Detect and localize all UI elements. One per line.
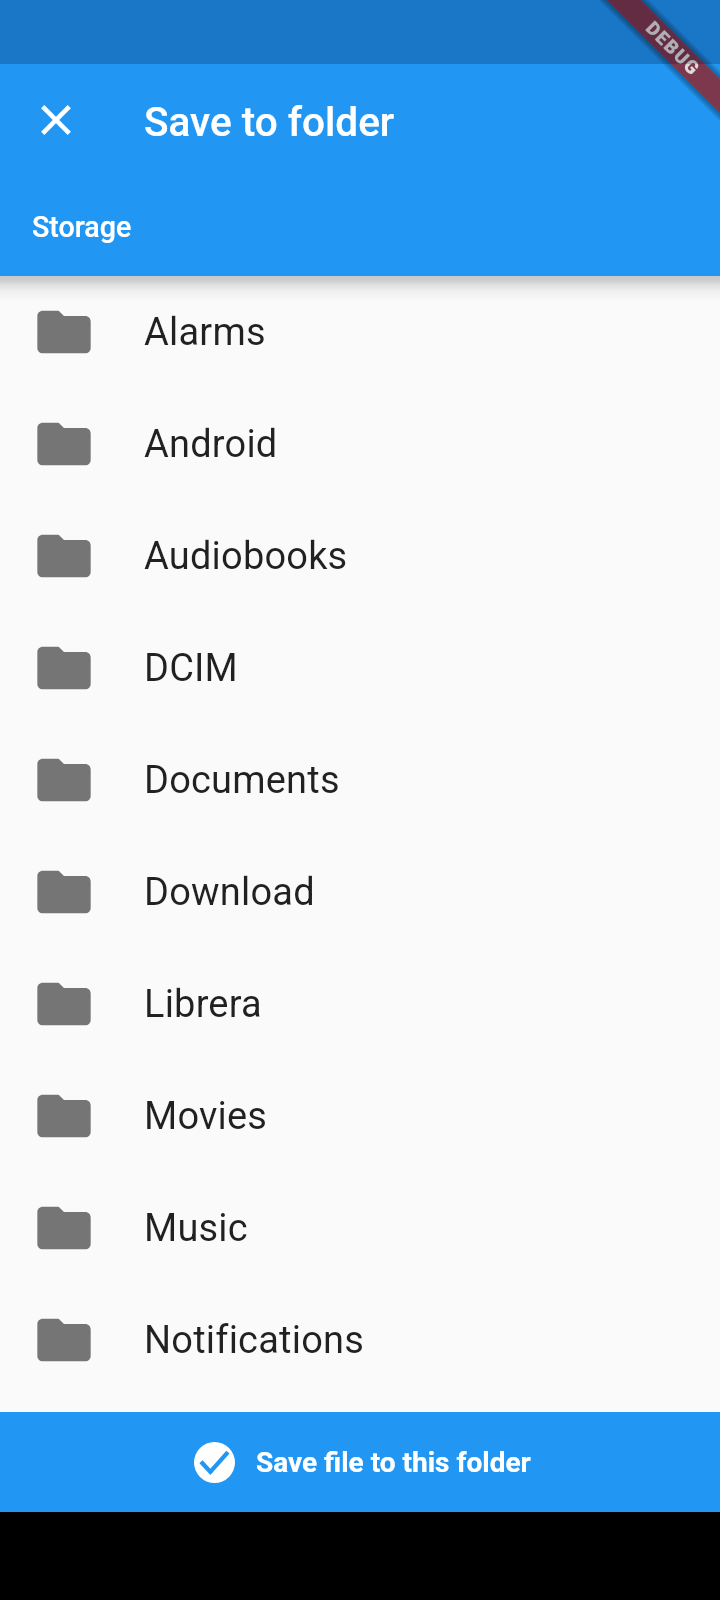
- staticText: DEBUG: [641, 17, 705, 81]
- staticText: Alarms: [144, 310, 266, 355]
- staticText: Notifications: [144, 1318, 365, 1363]
- button[interactable]: Android: [0, 388, 720, 500]
- staticText: Documents: [144, 758, 340, 803]
- button[interactable]: Storage: [32, 196, 144, 252]
- staticText: Download: [144, 870, 315, 915]
- staticText: Music: [144, 1206, 248, 1251]
- staticText: DCIM: [144, 646, 238, 691]
- staticText: Storage: [32, 210, 132, 244]
- staticText: Save to folder: [144, 98, 395, 145]
- staticText: Save file to this folder: [256, 1446, 531, 1479]
- button[interactable]: Download: [0, 836, 720, 948]
- button[interactable]: Save file to this folder: [0, 1412, 720, 1512]
- button[interactable]: Close: [8, 72, 104, 168]
- button[interactable]: Music: [0, 1172, 720, 1284]
- button[interactable]: Documents: [0, 724, 720, 836]
- button[interactable]: DCIM: [0, 612, 720, 724]
- button[interactable]: Alarms: [0, 276, 720, 388]
- button[interactable]: Notifications: [0, 1284, 720, 1396]
- button[interactable]: Audiobooks: [0, 500, 720, 612]
- staticText: Android: [144, 422, 278, 467]
- button[interactable]: Movies: [0, 1060, 720, 1172]
- staticText: Movies: [144, 1094, 268, 1139]
- staticText: Librera: [144, 982, 262, 1027]
- staticText: Audiobooks: [144, 534, 348, 579]
- button[interactable]: Librera: [0, 948, 720, 1060]
